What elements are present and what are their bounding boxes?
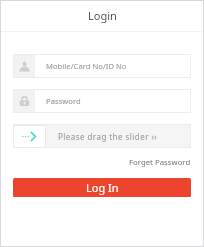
button[interactable]: Forget Password [129, 157, 191, 168]
staticText: Forget Password [129, 157, 191, 168]
button[interactable]: Mobile/Card No/ID No [13, 54, 191, 78]
button[interactable]: Password [13, 89, 191, 113]
button[interactable]: Drag the slider [13, 125, 46, 148]
staticText: Mobile/Card No/ID No [46, 61, 127, 71]
staticText: Password [46, 96, 81, 106]
staticText: Please drag the slider ›› [58, 131, 158, 142]
button[interactable]: Log In [13, 178, 191, 197]
staticText: Log In [86, 180, 119, 195]
staticText: Login [88, 8, 117, 23]
